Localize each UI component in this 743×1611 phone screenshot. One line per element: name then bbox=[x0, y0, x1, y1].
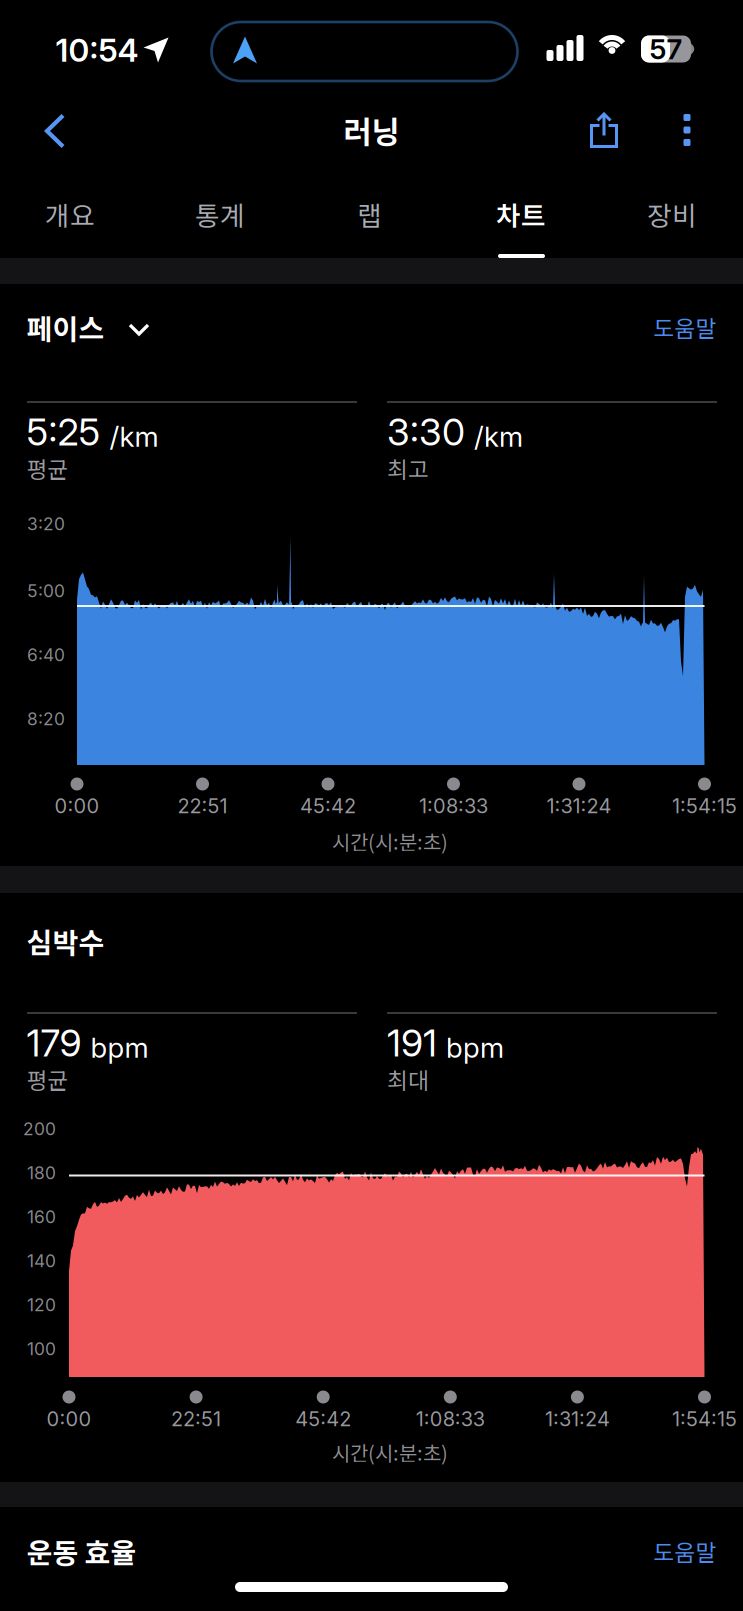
staticText: 도움말 bbox=[653, 311, 716, 343]
staticText: 1:08:33 bbox=[419, 794, 488, 818]
staticText: 운동 효율 bbox=[26, 1531, 136, 1571]
staticText: 평균 bbox=[26, 1063, 68, 1095]
staticText: 100 bbox=[27, 1338, 56, 1359]
staticText: 22:51 bbox=[171, 1407, 221, 1431]
button[interactable]: 통계 bbox=[165, 186, 275, 242]
button[interactable]: 랩 bbox=[315, 186, 425, 242]
button[interactable]: 도움말 bbox=[653, 1535, 716, 1567]
staticText: bpm bbox=[446, 1031, 504, 1065]
staticText: /km bbox=[474, 420, 523, 454]
button[interactable]: 도움말 bbox=[653, 311, 716, 343]
staticText: 최대 bbox=[387, 1063, 429, 1095]
staticText: 179 bbox=[26, 1020, 81, 1066]
staticText: 통계 bbox=[195, 195, 245, 233]
staticText: 10:54 bbox=[55, 31, 138, 69]
staticText: 장비 bbox=[647, 195, 697, 233]
button[interactable]: More bbox=[669, 108, 705, 152]
staticText: 45:42 bbox=[300, 794, 356, 818]
staticText: 러닝 bbox=[343, 108, 399, 152]
button[interactable]: Back bbox=[33, 109, 77, 153]
staticText: 1:08:33 bbox=[416, 1407, 485, 1431]
staticText: 페이스 bbox=[26, 307, 104, 347]
staticText: 개요 bbox=[45, 195, 95, 233]
staticText: 랩 bbox=[357, 195, 382, 233]
staticText: 평균 bbox=[26, 452, 68, 484]
staticText: 6:40 bbox=[27, 644, 65, 665]
staticText: 시간(시:분:초) bbox=[332, 1437, 448, 1466]
staticText: 8:20 bbox=[27, 708, 65, 729]
button[interactable]: Share bbox=[582, 108, 626, 152]
staticText: 1:31:24 bbox=[546, 794, 611, 818]
button[interactable]: 장비 bbox=[617, 186, 727, 242]
staticText: bpm bbox=[90, 1031, 148, 1065]
staticText: 180 bbox=[27, 1162, 56, 1183]
staticText: 차트 bbox=[496, 195, 546, 233]
staticText: /km bbox=[109, 420, 158, 454]
staticText: 심박수 bbox=[26, 921, 104, 961]
staticText: 최고 bbox=[387, 452, 429, 484]
staticText: 5:25 bbox=[26, 409, 100, 455]
staticText: 57 bbox=[649, 32, 682, 66]
staticText: 45:42 bbox=[295, 1407, 351, 1431]
staticText: 3:30 bbox=[387, 409, 465, 455]
staticText: 1:54:15 bbox=[672, 794, 737, 818]
button[interactable]: 페이스 bbox=[26, 307, 149, 347]
staticText: 160 bbox=[27, 1206, 56, 1227]
staticText: 도움말 bbox=[653, 1535, 716, 1567]
staticText: 시간(시:분:초) bbox=[332, 826, 448, 855]
button[interactable]: 개요 bbox=[15, 186, 125, 242]
button[interactable]: 차트 bbox=[466, 186, 576, 242]
staticText: 140 bbox=[27, 1250, 56, 1271]
staticText: 200 bbox=[23, 1118, 56, 1139]
staticText: 1:31:24 bbox=[545, 1407, 610, 1431]
staticText: 0:00 bbox=[54, 794, 99, 818]
staticText: 3:20 bbox=[27, 513, 65, 534]
staticText: 120 bbox=[27, 1294, 56, 1315]
staticText: 5:00 bbox=[27, 580, 65, 601]
staticText: 0:00 bbox=[46, 1407, 91, 1431]
staticText: 22:51 bbox=[177, 794, 227, 818]
staticText: 1:54:15 bbox=[672, 1407, 737, 1431]
staticText: 191 bbox=[387, 1020, 437, 1066]
